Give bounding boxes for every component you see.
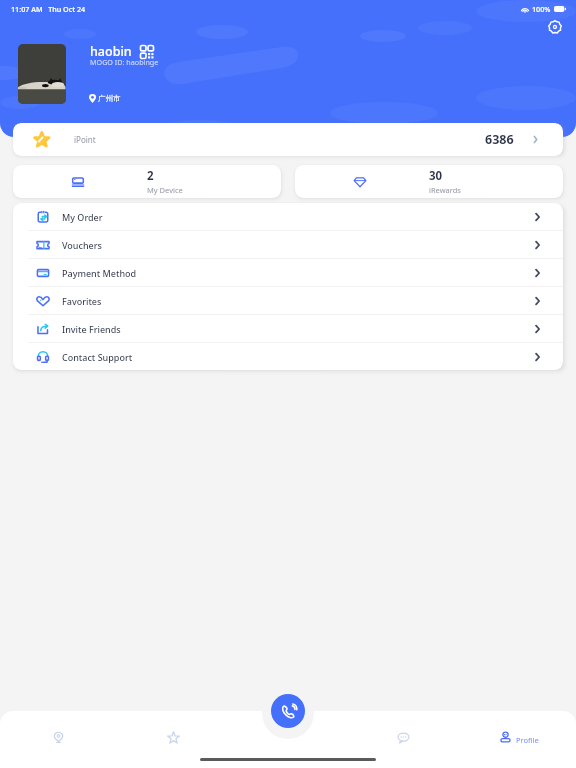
- button[interactable]: 2: [13, 165, 281, 198]
- button[interactable]: Favorites: [13, 287, 563, 314]
- button[interactable]: Vouchers: [13, 231, 563, 258]
- staticText: 6386: [485, 131, 514, 148]
- staticText: 2: [147, 168, 154, 184]
- button[interactable]: Messages: [346, 720, 461, 754]
- button[interactable]: Nearby: [0, 720, 116, 754]
- staticText: 30: [429, 168, 443, 184]
- staticText: My Order: [62, 211, 103, 223]
- staticText: 100%: [532, 4, 551, 14]
- staticText: MOGO ID: haobinge: [90, 57, 159, 67]
- staticText: 广州市: [98, 94, 121, 103]
- button[interactable]: Call: [271, 694, 305, 728]
- button[interactable]: Profile: [461, 720, 576, 754]
- staticText: haobin: [90, 43, 132, 60]
- staticText: Contact Support: [62, 351, 133, 363]
- staticText: 11:07 AM Thu Oct 24: [11, 4, 86, 14]
- button[interactable]: Favorites: [116, 720, 231, 754]
- button[interactable]: Invite Friends: [13, 315, 563, 342]
- button[interactable]: QR code: [140, 45, 154, 59]
- staticText: iPoint: [74, 134, 96, 145]
- staticText: Payment Method: [62, 267, 137, 279]
- staticText: Profile: [516, 735, 539, 745]
- staticText: Favorites: [62, 295, 102, 307]
- button[interactable]: Contact Support: [13, 343, 563, 370]
- button[interactable]: 30: [295, 165, 563, 198]
- button[interactable]: Settings: [547, 19, 563, 35]
- button[interactable]: iPoint: [13, 123, 563, 156]
- button[interactable]: Profile photo: [18, 44, 66, 104]
- button[interactable]: My Order: [13, 203, 563, 230]
- staticText: Invite Friends: [62, 323, 121, 335]
- staticText: My Device: [147, 185, 183, 195]
- button[interactable]: Payment Method: [13, 259, 563, 286]
- staticText: iRewards: [429, 185, 461, 195]
- staticText: Vouchers: [62, 239, 102, 251]
